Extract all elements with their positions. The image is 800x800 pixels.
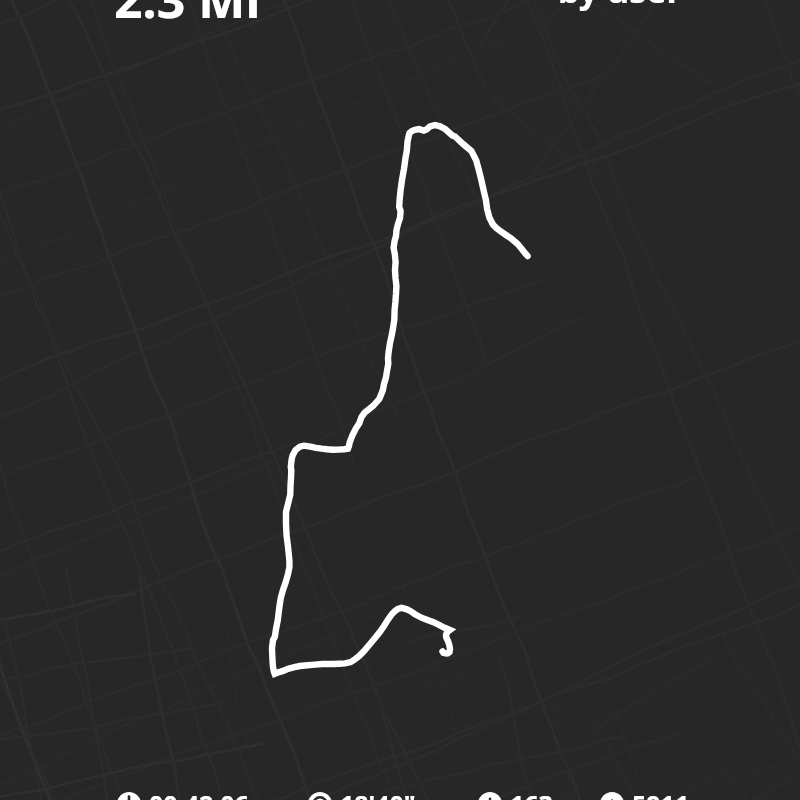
staticText: 00:42:06 — [149, 787, 249, 800]
button[interactable]: by user — [558, 0, 682, 13]
button[interactable]: Calories — [478, 787, 553, 800]
staticText: 5911 — [632, 787, 690, 800]
button[interactable]: Activity map — [0, 0, 800, 800]
button[interactable]: Elevation gain — [600, 787, 690, 800]
button[interactable]: Average pace — [308, 787, 416, 800]
button[interactable]: Duration — [117, 787, 249, 800]
staticText: 163 — [510, 787, 553, 800]
staticText: 18'40" — [340, 787, 416, 800]
button[interactable]: 2.3 Mi — [114, 0, 261, 33]
